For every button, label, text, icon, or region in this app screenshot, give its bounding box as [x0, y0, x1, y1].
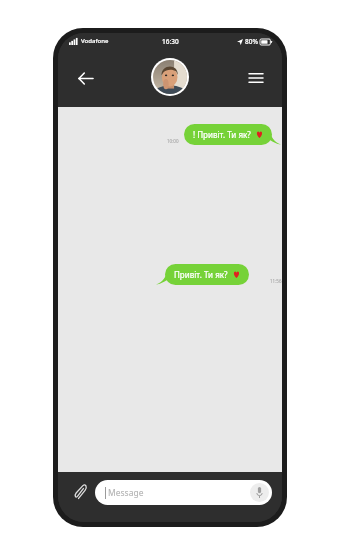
button[interactable]: Contact profile [151, 58, 189, 96]
button[interactable]: Привіт. Ти як? [165, 264, 249, 285]
button[interactable]: Voice message [250, 483, 269, 502]
staticText: Vodafone [81, 37, 109, 45]
staticText: 16:30 [162, 37, 179, 46]
button[interactable]: ! Привіт. Ти як? [184, 124, 272, 145]
staticText: 11:56 [270, 278, 282, 284]
staticText: 80% [245, 37, 258, 46]
staticText: 10:00 [167, 138, 179, 144]
staticText: Привіт. Ти як? [174, 269, 228, 280]
staticText: ! Привіт. Ти як? [193, 129, 251, 140]
button[interactable]: Back [72, 65, 98, 91]
staticText: Message [108, 487, 144, 499]
button[interactable]: Attach file [68, 481, 92, 505]
button[interactable]: Message [95, 480, 272, 505]
button[interactable]: Menu [244, 66, 268, 90]
